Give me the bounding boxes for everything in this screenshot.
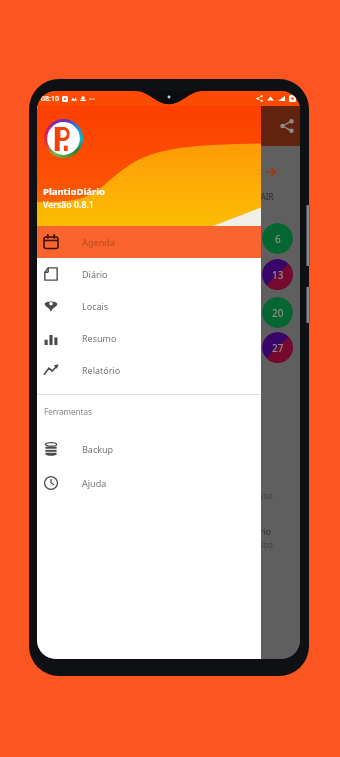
staticText: Locais <box>82 300 109 312</box>
staticText: Backup <box>82 443 114 455</box>
staticText: 6 <box>275 232 281 246</box>
button[interactable]: Resumo <box>37 322 261 354</box>
button[interactable]: Locais <box>37 290 261 322</box>
staticText: Agenda <box>82 236 116 248</box>
staticText: Versão 0.8.1 <box>43 199 94 211</box>
button[interactable]: 13 <box>262 259 293 290</box>
button[interactable]: Ajuda <box>37 467 261 499</box>
staticText: SAIR <box>256 191 274 202</box>
button[interactable]: Relatório <box>37 354 261 386</box>
staticText: Diário <box>82 268 108 280</box>
staticText: sso <box>259 538 274 550</box>
staticText: Relatório <box>82 364 121 376</box>
staticText: Ajuda <box>82 477 107 489</box>
button[interactable]: 20 <box>262 297 293 328</box>
button[interactable]: Backup <box>37 433 261 465</box>
staticText: 08:10 <box>41 94 59 104</box>
button[interactable]: 27 <box>262 332 293 363</box>
staticText: 13 <box>272 268 284 282</box>
button[interactable]: Share <box>275 114 299 138</box>
staticText: rio <box>259 525 272 538</box>
staticText: sso <box>259 489 274 501</box>
button[interactable]: Agenda <box>37 226 261 258</box>
button[interactable]: Diário <box>37 258 261 290</box>
staticText: Ferramentas <box>44 406 92 417</box>
staticText: PlantioDiário <box>43 185 106 198</box>
staticText: 27 <box>272 341 284 355</box>
staticText: Resumo <box>82 332 117 344</box>
staticText: 20 <box>272 306 284 320</box>
button[interactable]: Next <box>263 164 279 180</box>
button[interactable]: 6 <box>262 223 293 254</box>
button[interactable]: PlantioDiário <box>37 106 261 659</box>
